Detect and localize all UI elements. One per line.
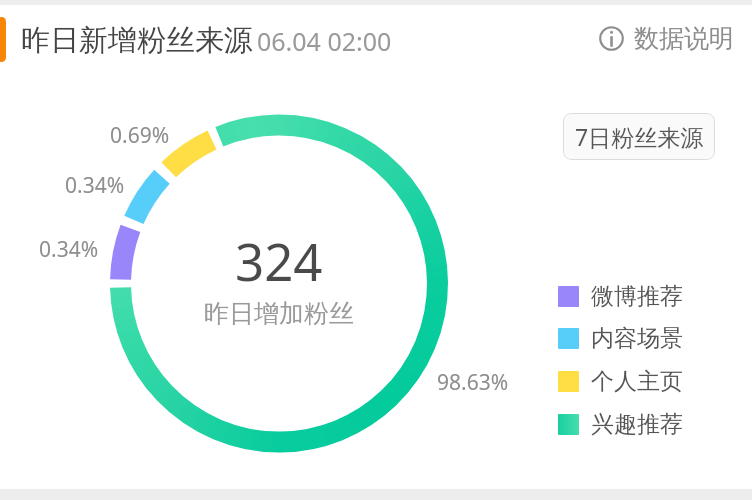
staticText: 06.04 02:00 <box>257 24 392 58</box>
staticText: 内容场景 <box>591 324 683 353</box>
button[interactable]: 个人主页 <box>558 367 683 396</box>
other: Data explanation <box>599 26 624 51</box>
staticText: 个人主页 <box>591 367 683 396</box>
staticText: 324 <box>235 226 323 295</box>
button[interactable]: Data explanation <box>599 23 734 54</box>
staticText: 7日粉丝来源 <box>575 121 704 152</box>
staticText: 昨日新增粉丝来源 <box>21 22 253 59</box>
button[interactable]: 微博推荐 <box>558 282 683 311</box>
staticText: 数据说明 <box>634 23 734 54</box>
staticText: 0.69% <box>110 121 170 150</box>
staticText: 0.34% <box>65 171 125 200</box>
button[interactable]: 7日粉丝来源 <box>563 113 715 160</box>
staticText: 兴趣推荐 <box>591 410 683 439</box>
staticText: 98.63% <box>437 368 509 397</box>
staticText: 微博推荐 <box>591 282 683 311</box>
staticText: 昨日增加粉丝 <box>204 298 354 329</box>
staticText: 0.34% <box>39 235 99 264</box>
button[interactable]: 内容场景 <box>558 324 683 353</box>
button[interactable]: 兴趣推荐 <box>558 410 683 439</box>
